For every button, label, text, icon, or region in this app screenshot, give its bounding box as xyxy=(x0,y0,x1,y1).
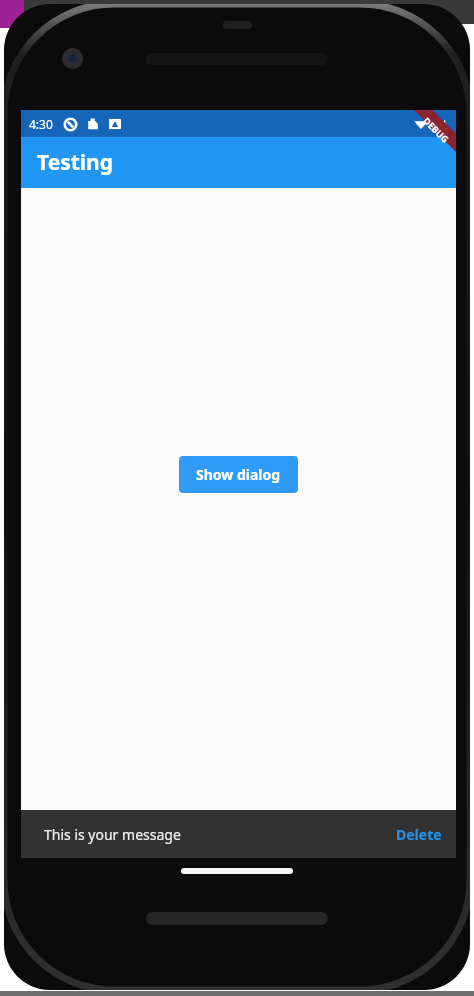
staticText: Delete xyxy=(396,825,442,844)
other: Debug banner xyxy=(386,110,456,180)
staticText: 4:30 xyxy=(29,116,53,132)
button[interactable]: Delete xyxy=(382,813,456,856)
staticText: Testing xyxy=(37,148,114,177)
staticText: Show dialog xyxy=(196,465,281,484)
button[interactable]: Show dialog xyxy=(179,456,298,493)
staticText: This is your message xyxy=(44,825,181,844)
